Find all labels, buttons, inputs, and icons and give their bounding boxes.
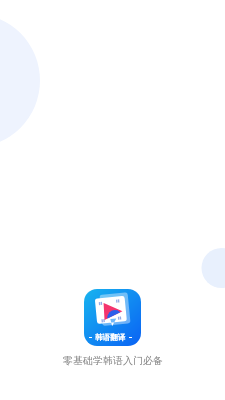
staticText: 零基础学韩语入门必备 bbox=[63, 354, 163, 367]
staticText: 韩语翻译 bbox=[95, 333, 126, 342]
